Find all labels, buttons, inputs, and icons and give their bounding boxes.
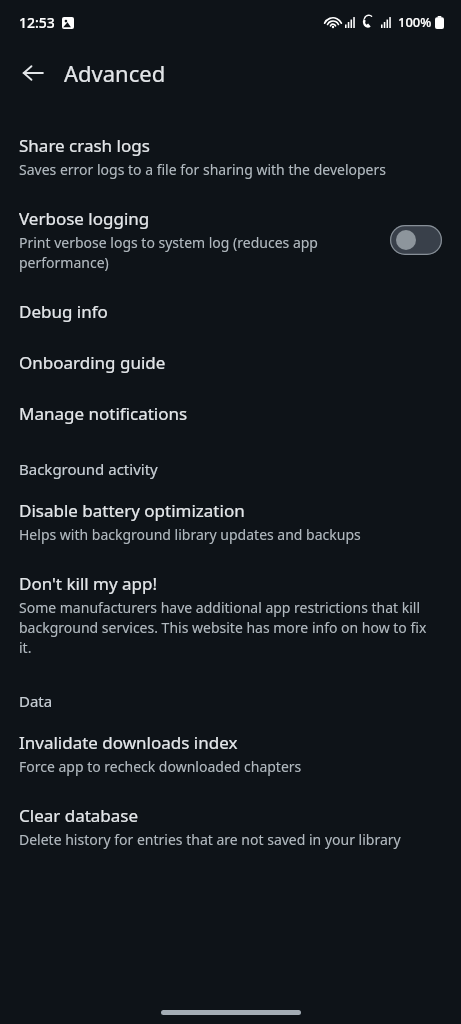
button[interactable]: Verbose logging toggle <box>390 225 442 255</box>
button[interactable]: Disable battery optimization <box>0 485 461 558</box>
staticText: Onboarding guide <box>19 351 166 374</box>
button[interactable]: Don't kill my app! <box>0 558 461 671</box>
button[interactable]: Clear database <box>0 790 461 863</box>
staticText: 100% <box>398 13 432 31</box>
staticText: Print verbose logs to system log (reduce… <box>19 233 374 272</box>
staticText: Delete history for entries that are not … <box>19 830 401 849</box>
staticText: Some manufacturers have additional app r… <box>19 598 442 657</box>
staticText: Debug info <box>19 300 108 323</box>
button[interactable]: Debug info <box>0 286 461 337</box>
staticText: Disable battery optimization <box>19 499 245 522</box>
staticText: Manage notifications <box>19 402 188 425</box>
staticText: 12:53 <box>19 13 55 32</box>
staticText: Data <box>19 691 53 711</box>
staticText: Invalidate downloads index <box>19 731 238 754</box>
staticText: Helps with background library updates an… <box>19 525 361 544</box>
staticText: Saves error logs to a file for sharing w… <box>19 160 386 179</box>
staticText: Advanced <box>64 58 166 88</box>
staticText: Force app to recheck downloaded chapters <box>19 757 302 776</box>
staticText: Share crash logs <box>19 134 150 157</box>
button[interactable]: Back <box>11 51 55 95</box>
button[interactable]: Onboarding guide <box>0 337 461 388</box>
button[interactable]: Verbose logging <box>0 193 461 286</box>
staticText: Verbose logging <box>19 207 150 230</box>
button[interactable]: Share crash logs <box>0 120 461 193</box>
button[interactable]: Manage notifications <box>0 388 461 439</box>
button[interactable]: Invalidate downloads index <box>0 717 461 790</box>
staticText: Clear database <box>19 804 139 827</box>
staticText: Don't kill my app! <box>19 572 158 595</box>
staticText: Background activity <box>19 459 158 479</box>
